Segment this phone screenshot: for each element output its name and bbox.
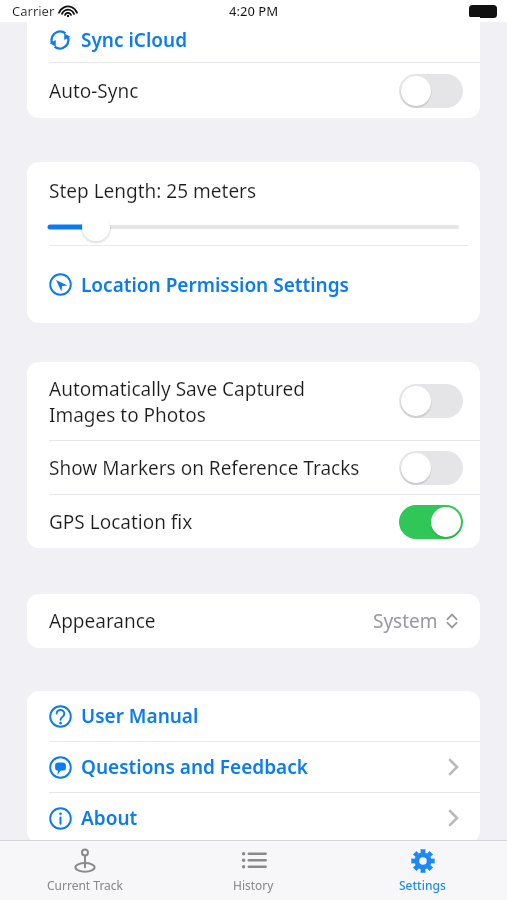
button[interactable]: GPS Location fix [27, 495, 480, 548]
staticText: Questions and Feedback [81, 754, 308, 780]
button[interactable]: Questions and Feedback [27, 742, 480, 792]
button[interactable]: Settings [338, 841, 507, 900]
staticText: Automatically Save Captured Images to Ph… [49, 376, 391, 427]
staticText: Settings [399, 877, 446, 893]
button[interactable]: Step length slider [49, 212, 458, 242]
button[interactable]: About [27, 793, 480, 843]
staticText: 4:20 PM [229, 2, 279, 20]
button[interactable]: History [169, 841, 338, 900]
staticText: System [373, 608, 438, 634]
staticText: Auto-Sync [49, 78, 139, 104]
button[interactable]: Show Markers on Reference Tracks [27, 441, 480, 494]
button[interactable]: Auto-Sync [27, 63, 480, 118]
staticText: User Manual [81, 703, 199, 729]
button[interactable]: Sync iCloud [27, 17, 480, 62]
button[interactable]: Appearance [27, 594, 480, 648]
button[interactable]: Automatically Save Captured Images to Ph… [27, 362, 480, 440]
staticText: Show Markers on Reference Tracks [49, 455, 391, 481]
staticText: Appearance [49, 608, 156, 634]
staticText: History [233, 877, 274, 893]
button[interactable]: Current Track [0, 841, 169, 900]
staticText: Carrier [12, 2, 55, 20]
staticText: GPS Location fix [49, 509, 391, 535]
button[interactable]: User Manual [27, 691, 480, 741]
staticText: About [81, 805, 138, 831]
button[interactable]: Location Permission Settings [27, 246, 480, 323]
staticText: Location Permission Settings [81, 272, 349, 298]
staticText: Sync iCloud [81, 27, 188, 53]
staticText: Current Track [47, 877, 123, 893]
staticText: Step Length: 25 meters [49, 178, 257, 204]
